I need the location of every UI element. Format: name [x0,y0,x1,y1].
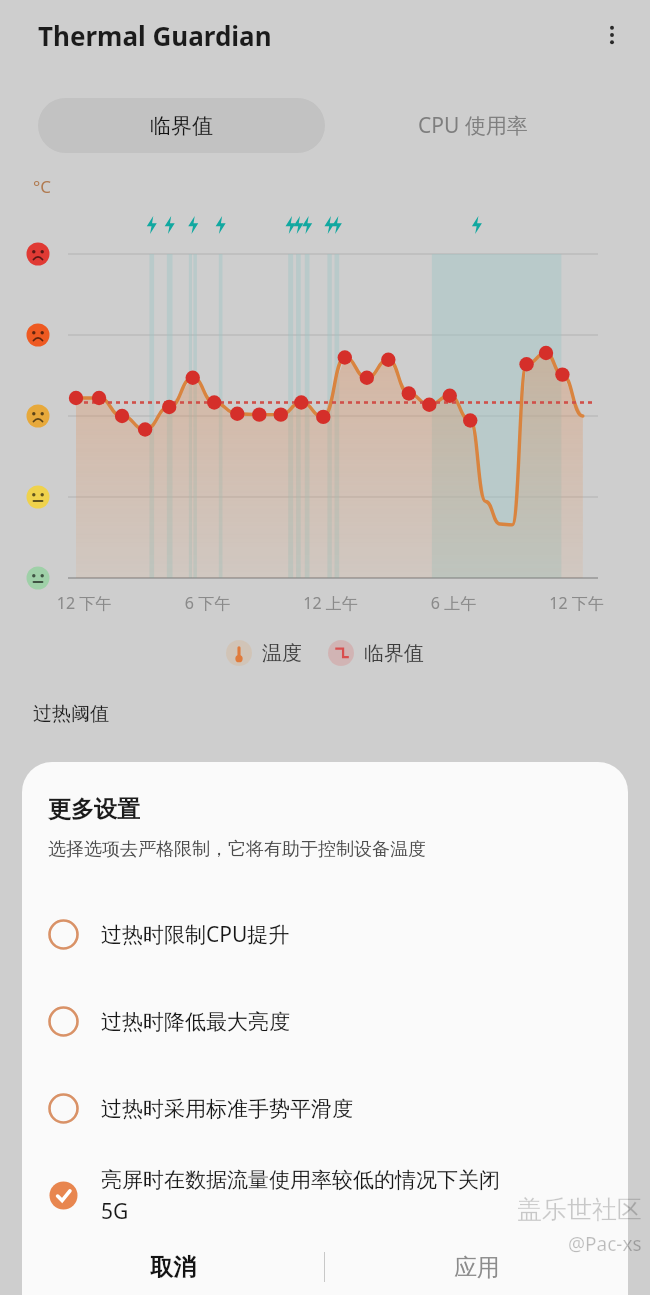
button[interactable]: More options [588,11,636,59]
button[interactable]: 临界值 [38,98,325,153]
staticText: 12 下午 [22,592,146,614]
staticText: 过热时降低最大亮度 [101,1009,290,1035]
button[interactable]: 过热时降低最大亮度 [22,978,628,1065]
button[interactable]: 取消 [22,1239,324,1295]
staticText: 过热阈值 [33,702,109,726]
staticText: 亮屏时在数据流量使用率较低的情况下关闭 5G [101,1167,500,1225]
staticText: 临界值 [150,113,213,139]
button[interactable]: CPU 使用率 [325,98,620,153]
button[interactable]: 过热时采用标准手势平滑度 [22,1065,628,1152]
staticText: 12 下午 [515,592,638,614]
staticText: 6 上午 [392,592,515,614]
staticText: @Pac-xs [568,1231,642,1257]
button[interactable]: 应用 [325,1239,628,1295]
staticText: °C [33,175,52,198]
staticText: 取消 [150,1253,196,1282]
button[interactable]: 过热时限制CPU提升 [22,891,628,978]
staticText: 过热时采用标准手势平滑度 [101,1096,353,1122]
staticText: 盖乐世社区 [517,1194,642,1225]
staticText: 选择选项去严格限制，它将有助于控制设备温度 [48,838,426,861]
staticText: 更多设置 [48,795,140,824]
staticText: 温度 [262,641,302,666]
staticText: 临界值 [364,641,424,666]
button[interactable]: 亮屏时在数据流量使用率较低的情况下关闭 5G [22,1152,628,1239]
staticText: 应用 [454,1253,500,1282]
staticText: 12 上午 [269,592,392,614]
staticText: Thermal Guardian [38,18,272,53]
staticText: CPU 使用率 [418,111,528,140]
staticText: 过热时限制CPU提升 [101,920,290,949]
staticText: 6 下午 [146,592,269,614]
